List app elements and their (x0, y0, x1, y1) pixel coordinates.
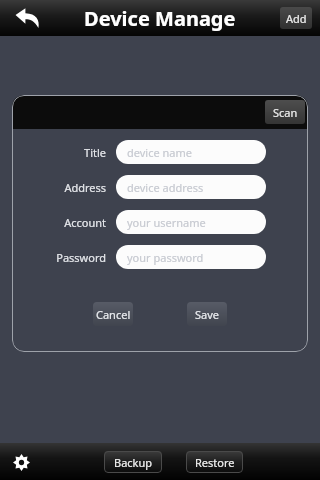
staticText: Address (64, 180, 106, 195)
staticText: Scan (273, 105, 298, 120)
staticText: Password (56, 250, 106, 265)
button[interactable]: Add (280, 7, 312, 29)
button[interactable]: Scan (265, 100, 305, 124)
button[interactable]: Save (187, 302, 227, 326)
button[interactable]: Cancel (93, 302, 133, 326)
button[interactable]: device address (116, 175, 266, 199)
staticText: device address (127, 180, 204, 195)
button[interactable]: your username (116, 210, 266, 234)
staticText: your password (127, 250, 204, 265)
staticText: Add (286, 11, 307, 26)
staticText: Restore (195, 455, 235, 470)
staticText: Save (195, 307, 220, 322)
button[interactable]: device name (116, 140, 266, 164)
staticText: Title (84, 145, 106, 160)
staticText: device name (127, 145, 192, 160)
button[interactable]: Settings (4, 445, 38, 479)
staticText: Device Manage (84, 5, 236, 32)
staticText: Backup (114, 455, 153, 470)
staticText: Cancel (96, 307, 131, 322)
button[interactable]: Backup (104, 451, 162, 473)
button[interactable]: Restore (186, 451, 243, 473)
staticText: your username (127, 215, 206, 230)
staticText: Account (64, 215, 106, 230)
button[interactable]: Back (8, 1, 48, 35)
button[interactable]: your password (116, 245, 266, 269)
